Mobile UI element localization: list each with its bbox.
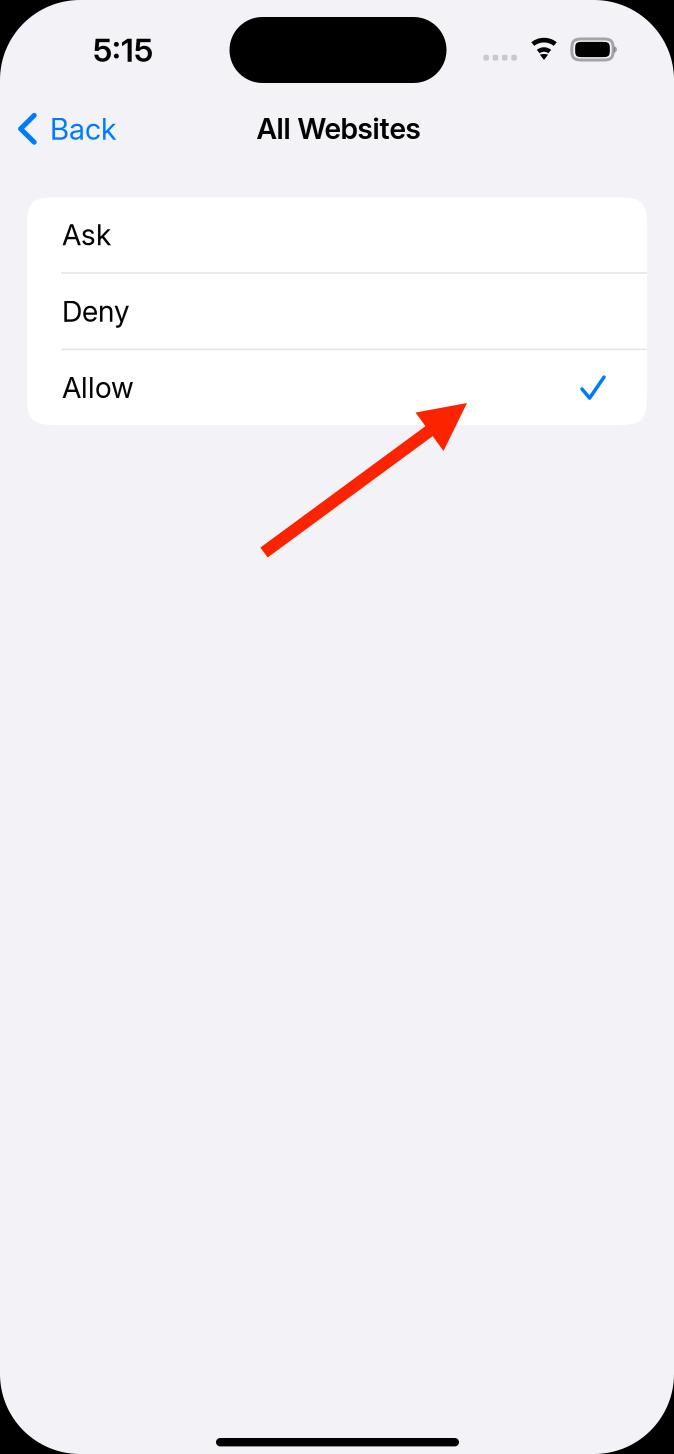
- staticText: Back: [50, 111, 117, 147]
- button[interactable]: Back: [1, 97, 133, 161]
- staticText: Ask: [62, 217, 111, 252]
- staticText: Deny: [62, 294, 130, 329]
- staticText: All Websites: [256, 111, 420, 146]
- button[interactable]: Allow: [27, 350, 647, 425]
- button[interactable]: Deny: [27, 274, 647, 349]
- staticText: Allow: [62, 370, 134, 405]
- staticText: 5:15: [93, 31, 153, 69]
- button[interactable]: Ask: [27, 197, 647, 272]
